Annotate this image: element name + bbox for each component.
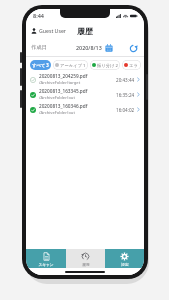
button[interactable]: 20200813_160346.pdf: [26, 102, 144, 117]
staticText: すべて 3: [32, 62, 49, 68]
button[interactable]: 履歴: [66, 249, 105, 268]
button[interactable]: 設定: [105, 249, 144, 268]
staticText: /ArchiveFolder/out: [39, 95, 75, 101]
button[interactable]: エラー 0: [122, 60, 141, 70]
staticText: 履歴: [77, 26, 93, 36]
staticText: /ArchiveFolder/target: [39, 80, 81, 86]
button[interactable]: アーカイブ 1: [53, 60, 88, 70]
staticText: エラー 0: [129, 63, 139, 68]
button[interactable]: Refresh: [127, 42, 139, 54]
button[interactable]: 振り分け 2: [90, 60, 120, 70]
staticText: 16:04:02: [116, 107, 135, 113]
button[interactable]: 20200813_204259.pdf: [26, 72, 144, 87]
staticText: 8:44: [33, 12, 44, 19]
button[interactable]: Guest User: [30, 25, 67, 36]
staticText: 作成日: [31, 44, 47, 51]
button[interactable]: スキャン: [26, 249, 66, 268]
staticText: 20200813_163345.pdf: [39, 88, 88, 94]
staticText: アーカイブ 1: [60, 62, 86, 68]
staticText: Guest User: [39, 27, 66, 34]
staticText: 20200813_160346.pdf: [39, 103, 88, 109]
staticText: スキャン: [38, 262, 54, 267]
staticText: 振り分け 2: [97, 62, 118, 68]
staticText: 設定: [121, 262, 129, 267]
staticText: 履歴: [82, 262, 90, 267]
staticText: 16:35:24: [116, 92, 135, 98]
button[interactable]: すべて 3: [30, 60, 51, 70]
staticText: 2020/8/13: [76, 44, 102, 51]
button[interactable]: 20200813_163345.pdf: [26, 87, 144, 102]
staticText: 20:43:44: [116, 77, 135, 83]
button[interactable]: 2020/8/13: [76, 41, 113, 54]
staticText: 20200813_204259.pdf: [39, 73, 88, 79]
other: Pick date: [104, 43, 113, 52]
staticText: /ArchiveFolder/out: [39, 110, 75, 116]
